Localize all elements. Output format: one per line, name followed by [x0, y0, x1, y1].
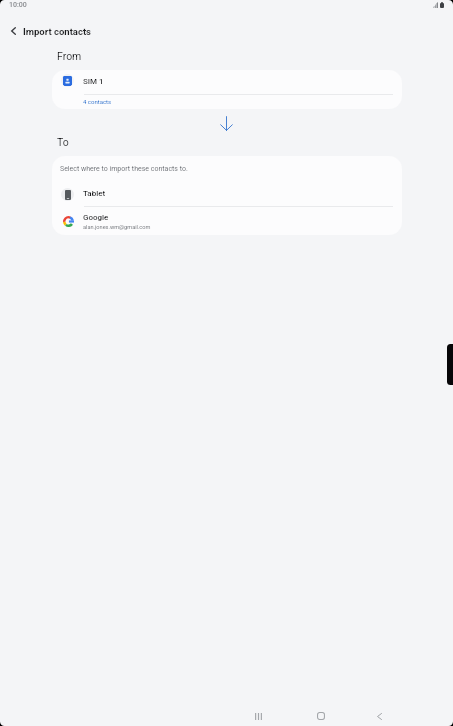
button[interactable]: Home: [290, 704, 351, 726]
button[interactable]: 4 contacts: [52, 96, 402, 108]
button[interactable]: Edge panel handle: [447, 344, 453, 385]
button[interactable]: Navigate up: [1, 19, 25, 43]
staticText: SIM 1: [83, 77, 104, 86]
staticText: 4 contacts: [83, 98, 112, 105]
button[interactable]: Tablet: [52, 182, 402, 206]
button[interactable]: Google: [52, 208, 402, 235]
staticText: Select where to import these contacts to…: [60, 165, 188, 173]
button[interactable]: SIM 1: [52, 70, 402, 94]
staticText: alan.jones.wm@gmail.com: [83, 224, 151, 231]
button[interactable]: Back: [349, 704, 410, 726]
staticText: Tablet: [83, 189, 106, 198]
staticText: Import contacts: [23, 26, 91, 37]
staticText: Google: [83, 213, 109, 222]
button[interactable]: Recent apps: [228, 704, 289, 726]
staticText: 10:00: [9, 1, 27, 9]
staticText: From: [57, 50, 82, 62]
staticText: To: [57, 136, 69, 148]
